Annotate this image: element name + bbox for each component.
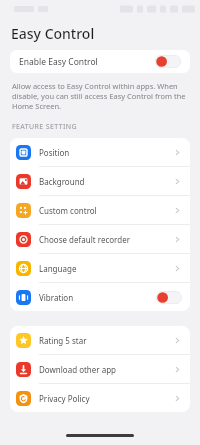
staticText: FEATURE SETTING <box>12 122 78 132</box>
other: Open <box>173 235 182 244</box>
staticText: Position <box>39 147 70 158</box>
button[interactable]: Custom control <box>10 196 190 224</box>
staticText: Language <box>39 263 77 274</box>
other: Open <box>173 148 182 157</box>
other: Open <box>173 177 182 186</box>
other: Open <box>173 394 182 403</box>
button[interactable]: Background <box>10 167 190 195</box>
other: Open <box>173 264 182 273</box>
button[interactable]: Toggle <box>155 55 181 68</box>
staticText: Allow access to Easy Control within apps… <box>12 81 188 111</box>
other: Open <box>173 365 182 374</box>
button[interactable]: Vibration <box>10 283 190 311</box>
staticText: Easy Control <box>11 24 95 43</box>
button[interactable]: Download other app <box>10 355 190 383</box>
staticText: Download other app <box>39 364 117 375</box>
staticText: Privacy Policy <box>39 393 90 404</box>
staticText: Choose default recorder <box>39 234 130 245</box>
button[interactable]: Privacy Policy <box>10 384 190 412</box>
button[interactable]: Language <box>10 254 190 282</box>
button[interactable]: Choose default recorder <box>10 225 190 253</box>
other: Open <box>173 336 182 345</box>
button[interactable]: Rating 5 star <box>10 326 190 354</box>
staticText: Background <box>39 176 85 187</box>
button[interactable]: Enable Easy Control <box>10 50 190 73</box>
other: Open <box>173 206 182 215</box>
staticText: Vibration <box>39 292 74 303</box>
staticText: Rating 5 star <box>39 335 87 346</box>
staticText: Custom control <box>39 205 97 216</box>
button[interactable]: Position <box>10 138 190 166</box>
button[interactable]: Toggle <box>156 291 182 304</box>
staticText: Enable Easy Control <box>19 56 98 68</box>
